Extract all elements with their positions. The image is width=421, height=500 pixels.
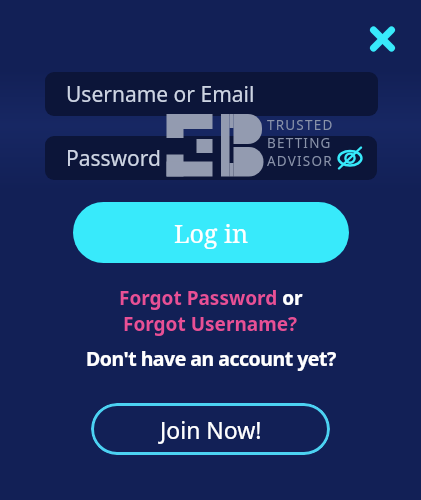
staticText: Join Now! [160,414,262,445]
button[interactable] [366,22,399,55]
button[interactable] [333,142,366,174]
button[interactable]: Password [45,136,377,180]
button[interactable]: Forgot Username? [123,311,298,337]
button[interactable]: Join Now! [91,403,330,455]
staticText: Log in [174,216,249,250]
button[interactable]: Username or Email [45,72,378,116]
staticText: BETTING [267,134,332,152]
staticText: TRUSTED [267,116,334,134]
staticText: Don't have an account yet? [86,345,336,372]
staticText: Username or Email [66,80,255,109]
button[interactable]: Forgot Password or [119,285,303,311]
staticText: Password [66,144,161,173]
button[interactable]: Log in [73,202,349,263]
staticText: ADVISOR [267,152,333,170]
